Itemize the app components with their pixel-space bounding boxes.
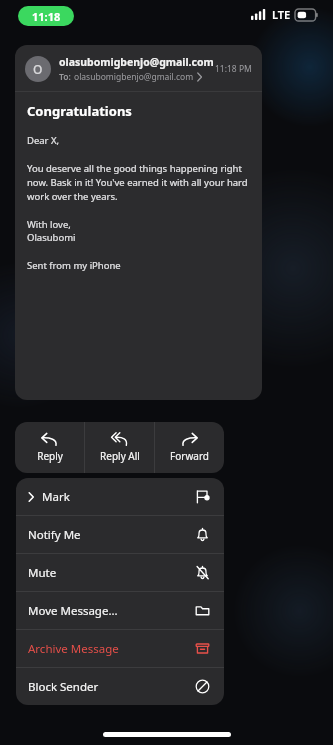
button[interactable]: Notify Me: [16, 516, 224, 553]
staticText: Reply: [37, 449, 63, 463]
staticText: With love,: [27, 218, 71, 231]
staticText: Block Sender: [28, 679, 195, 695]
staticText: olasubomigbenjo@gmail.com: [74, 71, 194, 83]
button[interactable]: O: [15, 45, 262, 400]
staticText: Archive Message: [28, 641, 195, 657]
staticText: To:: [59, 71, 74, 83]
staticText: Forward: [170, 449, 209, 463]
button[interactable]: Mute: [16, 554, 224, 591]
staticText: 11:18: [32, 9, 61, 24]
staticText: 11:18 PM: [215, 63, 252, 75]
staticText: You deserve all the good things happenin…: [27, 162, 250, 203]
button[interactable]: Archive Message: [16, 630, 224, 667]
staticText: Olasubomi: [27, 231, 76, 244]
staticText: Mute: [28, 565, 195, 581]
staticText: Mark: [42, 489, 195, 505]
button[interactable]: Reply All: [85, 422, 154, 473]
staticText: Reply All: [100, 449, 140, 463]
button[interactable]: Forward: [155, 422, 224, 473]
button[interactable]: Mark: [16, 478, 224, 515]
staticText: Notify Me: [28, 527, 195, 543]
staticText: olasubomigbenjo@gmail.com: [59, 55, 214, 69]
staticText: O: [33, 61, 43, 77]
staticText: Sent from my iPhone: [27, 259, 121, 272]
button[interactable]: Move Message...: [16, 592, 224, 629]
button[interactable]: Reply: [15, 422, 84, 473]
staticText: Dear X,: [27, 134, 60, 147]
staticText: LTE: [272, 7, 291, 22]
staticText: Move Message...: [28, 603, 195, 619]
button[interactable]: Block Sender: [16, 668, 224, 705]
staticText: Congratulations: [27, 102, 132, 120]
